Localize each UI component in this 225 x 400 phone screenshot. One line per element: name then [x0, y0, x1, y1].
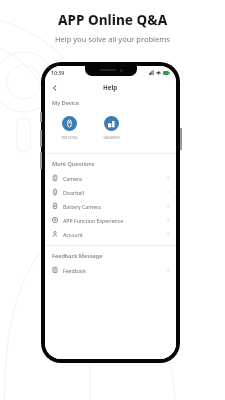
staticText: Feedback: [63, 267, 87, 274]
staticText: 10:39: [51, 69, 65, 76]
button[interactable]: Feedback: [45, 263, 176, 277]
button[interactable]: Doorbell: [45, 185, 176, 199]
button[interactable]: Back: [48, 81, 61, 94]
staticText: Feedback Message: [52, 252, 103, 260]
staticText: APP Online Q&A: [58, 11, 168, 29]
button[interactable]: 10012?4G: [52, 111, 86, 145]
staticText: 10012?4G: [61, 135, 78, 140]
button[interactable]: Camera: [45, 171, 176, 185]
staticText: Help you solve all your problems: [55, 34, 170, 44]
staticText: My Device: [52, 99, 80, 107]
staticText: 10040009: [103, 135, 120, 140]
staticText: Battery Camera: [63, 203, 102, 210]
staticText: Account: [63, 231, 83, 238]
button[interactable]: Account: [45, 227, 176, 241]
button[interactable]: APP Function Experience: [45, 213, 176, 227]
staticText: Camera: [63, 175, 82, 182]
button[interactable]: 10040009: [94, 111, 128, 145]
staticText: Help: [103, 83, 118, 91]
staticText: APP Function Experience: [63, 217, 124, 224]
button[interactable]: Battery Camera: [45, 199, 176, 213]
staticText: Doorbell: [63, 189, 84, 196]
staticText: More Questions: [52, 160, 95, 168]
